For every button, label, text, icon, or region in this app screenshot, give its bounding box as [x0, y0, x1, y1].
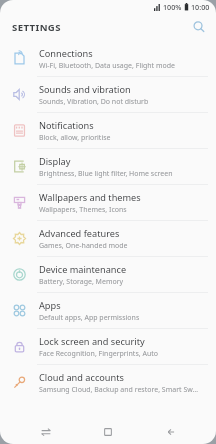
- button[interactable]: Notifications: [0, 113, 216, 149]
- staticText: Games, One-handed mode: [39, 241, 128, 251]
- staticText: Connections: [39, 47, 93, 60]
- staticText: Wi-Fi, Bluetooth, Data usage, Flight mod…: [39, 61, 176, 71]
- staticText: Sounds, Vibration, Do not disturb: [39, 97, 149, 107]
- staticText: Notifications: [39, 119, 94, 132]
- button[interactable]: Display: [0, 149, 216, 185]
- button[interactable]: Advanced features: [0, 221, 216, 257]
- staticText: Advanced features: [39, 227, 120, 240]
- staticText: Default apps, App permissions: [39, 313, 140, 323]
- button[interactable]: Apps: [0, 293, 216, 329]
- staticText: Apps: [39, 299, 61, 312]
- staticText: 100%: [163, 2, 182, 12]
- staticText: Wallpapers, Themes, Icons: [39, 205, 127, 215]
- staticText: Battery, Storage, Memory: [39, 277, 124, 287]
- staticText: 10:00: [191, 2, 210, 12]
- staticText: Sounds and vibration: [39, 83, 131, 96]
- staticText: Brightness, Blue light filter, Home scre…: [39, 169, 173, 179]
- button[interactable]: Wallpapers and themes: [0, 185, 216, 221]
- staticText: Face Recognition, Fingerprints, Auto: [39, 349, 158, 359]
- button[interactable]: Sounds and vibration: [0, 77, 216, 113]
- staticText: Samsung Cloud, Backup and restore, Smart…: [39, 385, 199, 395]
- staticText: Device maintenance: [39, 263, 127, 276]
- staticText: Lock screen and security: [39, 335, 145, 348]
- button[interactable]: Back: [154, 421, 188, 443]
- button[interactable]: Home: [91, 421, 125, 443]
- staticText: Display: [39, 155, 71, 168]
- button[interactable]: Cloud and accounts: [0, 365, 216, 400]
- button[interactable]: Lock screen and security: [0, 329, 216, 365]
- button[interactable]: Recents: [29, 421, 63, 443]
- button[interactable]: Connections: [0, 41, 216, 77]
- staticText: Wallpapers and themes: [39, 191, 141, 204]
- button[interactable]: Device maintenance: [0, 257, 216, 293]
- staticText: Cloud and accounts: [39, 371, 124, 384]
- staticText: SETTINGS: [12, 21, 61, 34]
- staticText: Block, allow, prioritise: [39, 133, 111, 143]
- button[interactable]: Search: [188, 16, 210, 38]
